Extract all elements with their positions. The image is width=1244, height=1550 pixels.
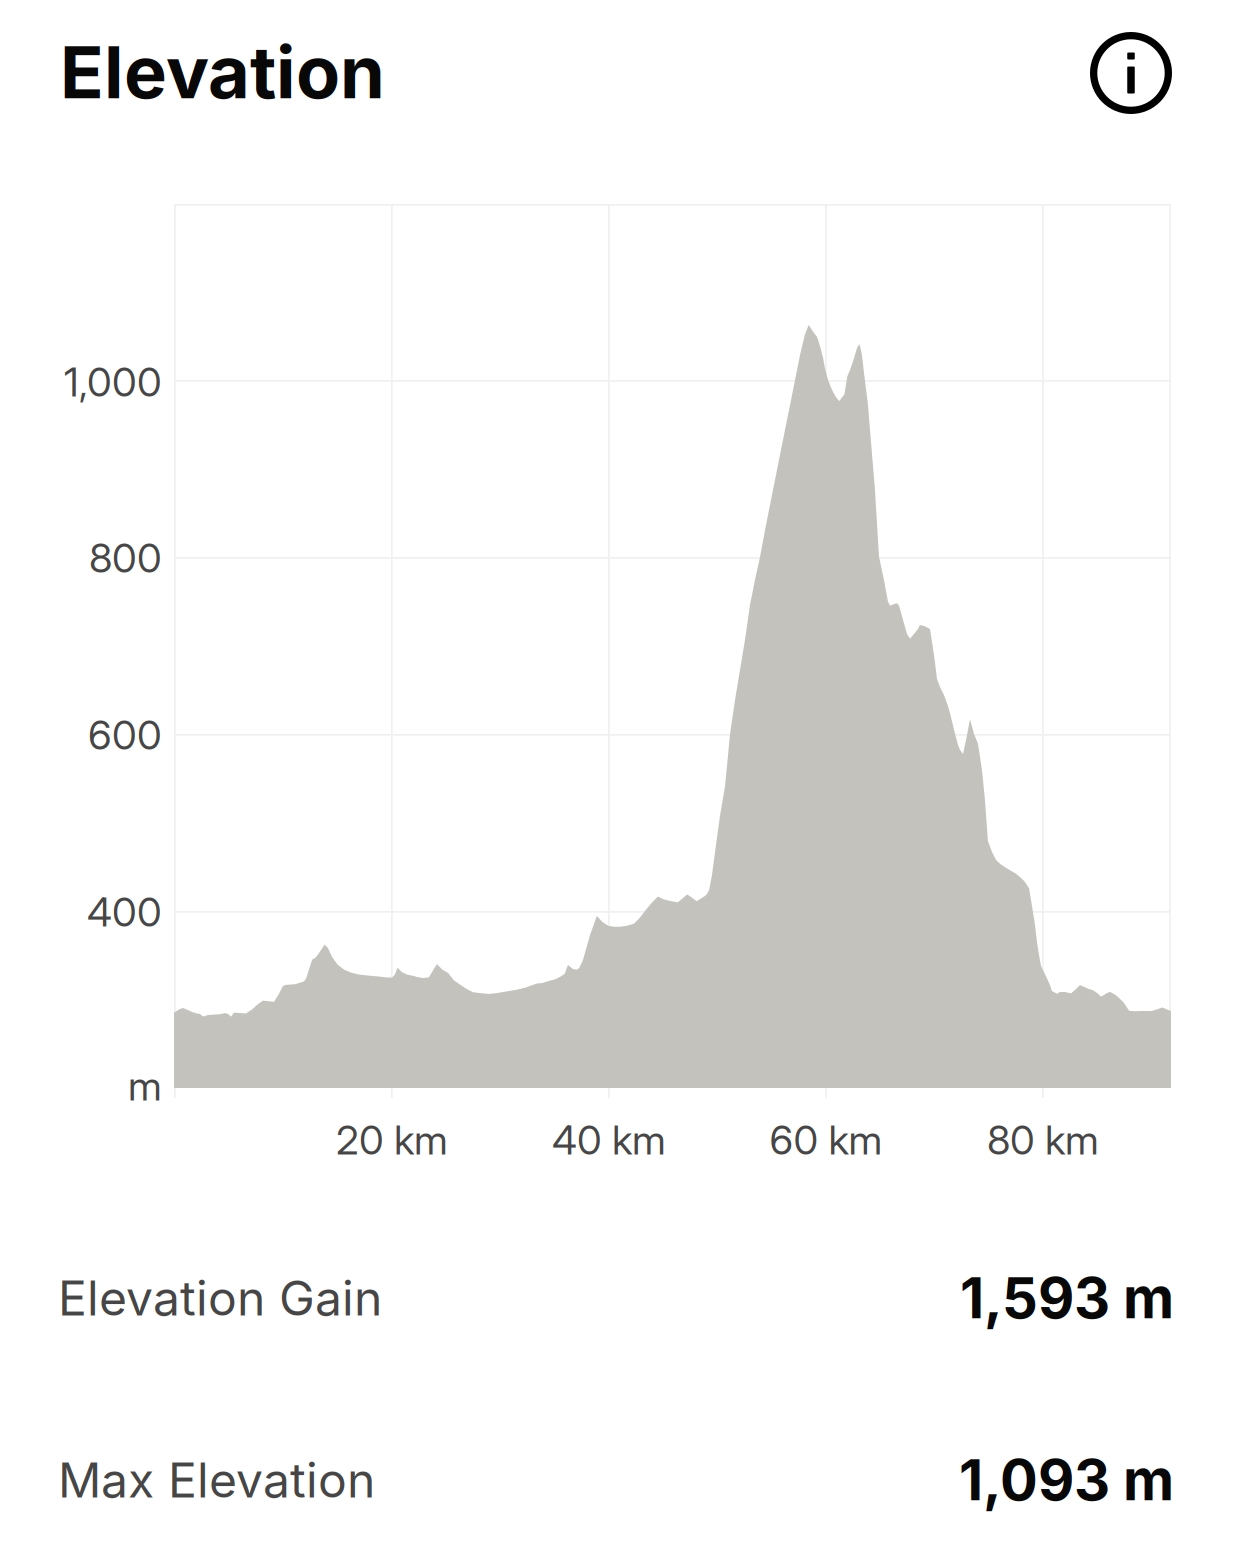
staticText: Elevation Gain xyxy=(58,1269,382,1327)
staticText: Elevation xyxy=(60,28,385,115)
staticText: 800 xyxy=(89,534,162,582)
staticText: 400 xyxy=(87,888,162,936)
staticText: 40 km xyxy=(552,1116,666,1164)
staticText: 20 km xyxy=(336,1116,448,1164)
staticText: 60 km xyxy=(769,1116,882,1164)
staticText: 1,593 m xyxy=(960,1264,1174,1332)
staticText: 1,093 m xyxy=(959,1446,1174,1514)
staticText: 600 xyxy=(88,711,162,759)
staticText: Max Elevation xyxy=(58,1451,375,1509)
staticText: m xyxy=(128,1062,162,1110)
staticText: 1,000 xyxy=(64,358,162,406)
button[interactable]: Info xyxy=(1085,27,1177,119)
staticText: 80 km xyxy=(987,1116,1099,1164)
